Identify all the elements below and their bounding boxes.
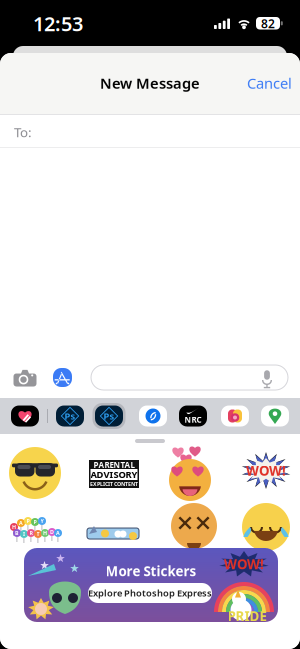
button[interactable]: Snow sticker — [87, 526, 139, 542]
button[interactable]: WOW! — [24, 548, 278, 622]
button[interactable]: Maps — [258, 402, 292, 430]
button[interactable]: Photoshop Express — [92, 402, 126, 430]
staticText: I — [23, 530, 25, 538]
staticText: H — [43, 529, 47, 537]
staticText: R — [29, 529, 32, 537]
staticText: WOW! — [246, 462, 286, 479]
staticText: PARENTAL — [93, 460, 134, 470]
staticText: Ps — [103, 410, 114, 422]
staticText: T — [36, 530, 39, 538]
staticText: New Message — [100, 73, 200, 93]
button[interactable]: Wow sticker — [241, 452, 291, 489]
button[interactable] — [91, 365, 288, 390]
button[interactable]: Cool sticker — [9, 447, 61, 501]
staticText: A — [19, 519, 23, 527]
staticText: More Stickers — [105, 562, 196, 580]
staticText: WOW! — [224, 555, 264, 573]
staticText: EXPLICIT CONTENT — [90, 480, 138, 488]
button[interactable]: Digital Touch — [8, 402, 42, 430]
staticText: P — [33, 518, 36, 526]
button[interactable]: Apps — [53, 368, 72, 387]
staticText: 82 — [261, 16, 275, 31]
staticText: PRIDE — [227, 607, 266, 625]
staticText: 12:53 — [33, 10, 83, 37]
button[interactable]: Photoshop — [53, 402, 87, 430]
staticText: A — [56, 529, 60, 537]
staticText: Cancel — [247, 73, 292, 93]
staticText: H — [12, 523, 16, 531]
button[interactable]: Dizzy sticker — [171, 503, 219, 553]
staticText: P — [26, 517, 29, 525]
button[interactable]: Camera — [13, 369, 36, 386]
staticText: Y — [40, 517, 43, 525]
staticText: Explore Photoshop Express — [88, 587, 212, 599]
button[interactable]: Parental advisory sticker — [89, 460, 139, 488]
staticText: ADVISORY — [90, 468, 137, 481]
button[interactable]: Heart eyes sticker — [166, 443, 214, 501]
staticText: B — [15, 529, 19, 537]
staticText: To: — [14, 123, 32, 141]
button[interactable]: Nike Run Club — [176, 402, 210, 430]
button[interactable]: Shazam — [136, 402, 170, 430]
staticText: Ps — [64, 410, 75, 422]
button[interactable]: Laughing sticker — [242, 503, 292, 553]
staticText: NRC — [184, 414, 201, 425]
button[interactable]: Cancel — [234, 71, 298, 95]
button[interactable]: Happy birthday sticker — [10, 516, 62, 542]
button[interactable]: Photo Collage — [218, 402, 252, 430]
staticText: D — [50, 528, 54, 536]
